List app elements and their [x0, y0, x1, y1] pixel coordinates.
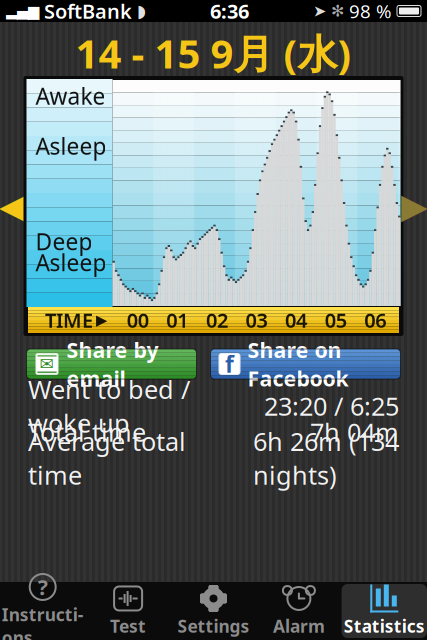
staticText: Deep	[35, 226, 92, 256]
button[interactable]: Alarm	[256, 584, 342, 638]
staticText: f	[225, 349, 234, 379]
button[interactable]: f	[210, 349, 400, 379]
staticText: Share on Facebook	[247, 336, 348, 392]
staticText: ▶	[96, 312, 107, 328]
staticText: Alarm	[273, 614, 325, 637]
button[interactable]: ✉	[26, 349, 196, 379]
staticText: Share by email	[66, 336, 158, 392]
button[interactable]: Settings	[171, 584, 256, 638]
staticText: ✻	[331, 2, 344, 20]
staticText: 01	[166, 307, 188, 333]
staticText: 00	[127, 307, 149, 333]
staticText: Average total time	[28, 424, 186, 492]
staticText: ?	[38, 573, 48, 601]
staticText: 6:36	[210, 0, 249, 24]
staticText: 6h 26m (134 nights)	[253, 424, 399, 492]
staticText: 04	[285, 307, 307, 333]
staticText: Statistics	[344, 614, 425, 637]
staticText: 7h 04m	[310, 415, 399, 449]
button[interactable]: ?	[0, 584, 85, 638]
staticText: SoftBank	[44, 0, 132, 24]
staticText: 14 - 15 9月 (水)	[75, 26, 351, 79]
staticText: ▂▄▆	[6, 3, 39, 19]
button[interactable]: Test	[85, 584, 171, 638]
button[interactable]: Statistics	[342, 584, 427, 638]
staticText: 02	[206, 307, 228, 333]
staticText: Awake	[35, 81, 105, 111]
staticText: 06	[364, 307, 386, 333]
staticText: Asleep	[35, 131, 106, 161]
staticText: Instructions	[2, 603, 84, 640]
staticText: 23:20 / 6:25	[264, 389, 399, 423]
button[interactable]: Next night	[402, 76, 427, 336]
staticText: ◀	[0, 186, 26, 226]
staticText: Asleep	[35, 247, 106, 277]
staticText: ▶	[401, 186, 427, 226]
staticText: Test	[110, 614, 146, 637]
button[interactable]: Previous night	[0, 76, 25, 336]
staticText: Went to bed / woke up	[28, 372, 190, 440]
staticText: Settings	[177, 614, 249, 637]
staticText: TIME	[45, 307, 93, 333]
staticText: 03	[245, 307, 267, 333]
staticText: ◗	[137, 1, 146, 21]
staticText: 98 %	[349, 0, 392, 23]
staticText: 05	[325, 307, 347, 333]
staticText: ✉	[39, 354, 54, 374]
staticText: Total time	[28, 415, 146, 449]
staticText: ➤	[313, 2, 326, 20]
